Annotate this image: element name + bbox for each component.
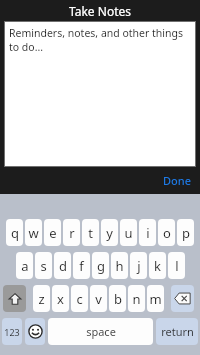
button[interactable]: Reminders, notes, and other things to do… — [4, 21, 196, 167]
button[interactable]: l — [168, 252, 185, 279]
button[interactable]: i — [139, 219, 156, 246]
staticText: w — [28, 224, 39, 242]
button[interactable]: return — [156, 318, 198, 345]
staticText: b — [114, 290, 122, 308]
staticText: t — [88, 224, 93, 242]
staticText: s — [40, 257, 47, 275]
button[interactable]: r — [63, 219, 80, 246]
staticText: y — [106, 224, 113, 242]
staticText: e — [49, 224, 57, 242]
button[interactable]: 123 — [2, 318, 22, 345]
button[interactable]: s — [35, 252, 52, 279]
staticText: n — [132, 290, 141, 308]
staticText: space — [86, 324, 116, 339]
staticText: m — [149, 290, 162, 308]
button[interactable]: f — [73, 252, 90, 279]
staticText: Take Notes — [69, 3, 131, 19]
button[interactable]: m — [147, 285, 164, 312]
button[interactable]: a — [16, 252, 33, 279]
button[interactable]: v — [90, 285, 107, 312]
staticText: return — [161, 324, 194, 339]
staticText: r — [69, 224, 75, 242]
staticText: p — [182, 224, 190, 242]
staticText: Reminders, notes, and other things to do… — [9, 26, 191, 54]
staticText: g — [97, 257, 105, 275]
button[interactable]: e — [44, 219, 61, 246]
staticText: k — [154, 257, 161, 275]
staticText: h — [115, 257, 124, 275]
button[interactable]: d — [54, 252, 71, 279]
button[interactable]: Backspace — [171, 285, 194, 312]
button[interactable]: x — [52, 285, 69, 312]
staticText: x — [57, 290, 64, 308]
staticText: f — [79, 257, 84, 275]
button[interactable]: n — [128, 285, 145, 312]
button[interactable]: j — [130, 252, 147, 279]
button[interactable]: u — [120, 219, 137, 246]
staticText: q — [11, 224, 19, 242]
staticText: o — [163, 224, 171, 242]
button[interactable]: w — [25, 219, 42, 246]
button[interactable]: b — [109, 285, 126, 312]
button[interactable]: q — [6, 219, 23, 246]
staticText: l — [175, 257, 179, 275]
staticText: u — [124, 224, 133, 242]
button[interactable]: p — [177, 219, 194, 246]
button[interactable]: z — [33, 285, 50, 312]
button[interactable]: g — [92, 252, 109, 279]
button[interactable]: k — [149, 252, 166, 279]
staticText: d — [59, 257, 67, 275]
button[interactable]: space — [48, 318, 153, 345]
button[interactable]: y — [101, 219, 118, 246]
staticText: c — [76, 290, 83, 308]
button[interactable]: Shift — [3, 285, 26, 312]
button[interactable]: c — [71, 285, 88, 312]
button[interactable]: o — [158, 219, 175, 246]
staticText: Done — [163, 173, 191, 188]
staticText: 123 — [4, 326, 20, 338]
staticText: j — [137, 257, 141, 275]
button[interactable]: t — [82, 219, 99, 246]
staticText: a — [21, 257, 29, 275]
button[interactable]: Done — [160, 171, 194, 190]
staticText: v — [95, 290, 102, 308]
button[interactable]: h — [111, 252, 128, 279]
staticText: i — [146, 224, 150, 242]
staticText: z — [38, 290, 45, 308]
button[interactable]: Emoji — [25, 318, 45, 345]
